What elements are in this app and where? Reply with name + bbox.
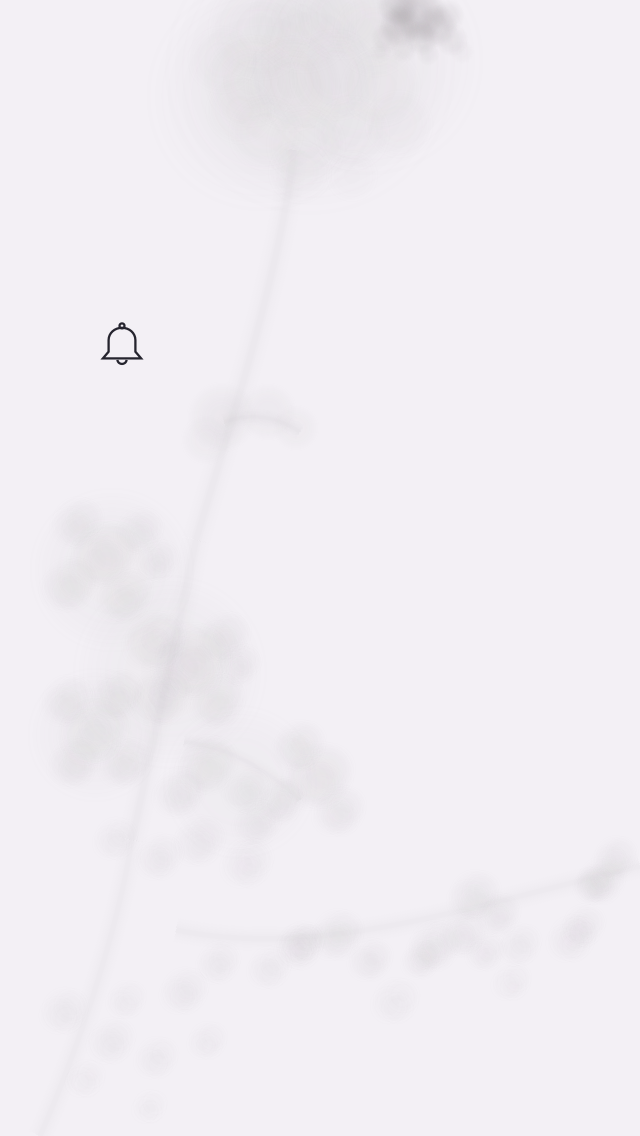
button[interactable]: Notifications bbox=[102, 321, 142, 365]
